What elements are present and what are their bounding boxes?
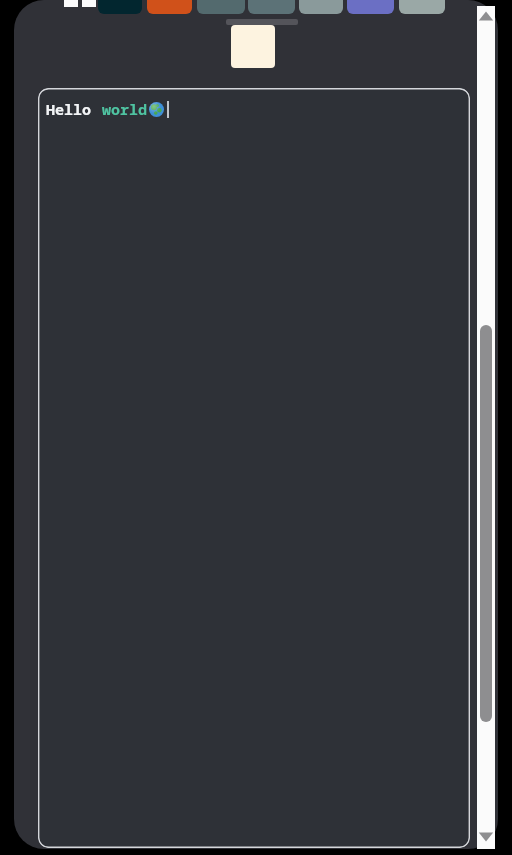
staticText: Hello (46, 99, 92, 119)
button[interactable]: Suggestion popup (231, 25, 275, 68)
button[interactable]: Scrollbar thumb (480, 325, 492, 722)
button[interactable]: Palette gray green (399, 0, 445, 14)
button[interactable]: Palette slate light (248, 0, 295, 14)
staticText: world (102, 99, 148, 119)
button[interactable]: Palette purple (347, 0, 394, 14)
button[interactable]: Hello (38, 88, 470, 848)
button[interactable]: Palette orange (147, 0, 192, 14)
button[interactable]: Palette dark teal (98, 0, 142, 14)
button[interactable]: Scroll up (477, 6, 495, 26)
button[interactable]: Palette gray (299, 0, 343, 14)
button[interactable]: Palette slate (197, 0, 245, 14)
button[interactable]: Scroll down (477, 827, 495, 847)
